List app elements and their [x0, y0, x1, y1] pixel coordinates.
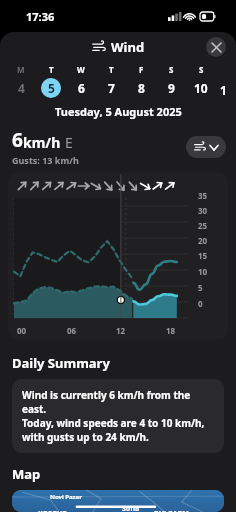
staticText: 5 — [48, 80, 55, 96]
staticText: 20 — [198, 235, 208, 246]
staticText: Wind — [111, 38, 145, 56]
staticText: 5 — [198, 282, 203, 293]
staticText: S — [169, 64, 174, 75]
staticText: 0 — [198, 298, 203, 309]
button[interactable]: Close — [206, 37, 226, 57]
staticText: 30 — [198, 205, 208, 216]
staticText: 17:36 — [26, 9, 55, 24]
staticText: 10 — [194, 80, 208, 96]
staticText: 4 — [18, 80, 25, 96]
staticText: Daily Summary — [12, 354, 110, 372]
staticText: S — [199, 64, 204, 75]
staticText: 15 — [198, 250, 208, 261]
staticText: Gusts: 13 km/h — [12, 154, 79, 166]
staticText: Map — [12, 465, 41, 483]
staticText: BULGARIA — [154, 509, 190, 512]
staticText: km/h — [23, 133, 61, 152]
staticText: 18 — [166, 325, 176, 335]
button[interactable]: F — [126, 64, 156, 98]
button[interactable]: Wind is currently 6 km/h from the east. … — [12, 379, 224, 453]
button[interactable]: S — [156, 64, 186, 98]
staticText: 00 — [17, 325, 27, 335]
staticText: 6 — [12, 127, 23, 153]
staticText: 35 — [198, 190, 208, 201]
button[interactable]: M — [6, 64, 36, 98]
staticText: 25 — [198, 220, 208, 231]
button[interactable] — [186, 136, 226, 158]
staticText: M — [17, 64, 25, 75]
button[interactable]: T — [96, 64, 126, 98]
staticText: Wind is currently 6 km/h from the east. … — [22, 388, 214, 444]
staticText: T — [49, 64, 54, 75]
staticText: Novi Pazar — [50, 493, 82, 501]
staticText: KOSOVO — [38, 509, 68, 512]
staticText: Sofia — [122, 504, 140, 512]
staticText: 6 — [78, 80, 85, 96]
button[interactable]: W — [66, 64, 96, 98]
staticText: W — [77, 64, 85, 75]
button[interactable]: Map — [12, 490, 224, 512]
staticText: E — [65, 133, 73, 152]
staticText: T — [109, 64, 114, 75]
staticText: 7 — [108, 80, 115, 96]
staticText: Tuesday, 5 August 2025 — [55, 104, 182, 119]
staticText: 06 — [67, 325, 77, 335]
staticText: 12 — [116, 325, 126, 335]
button[interactable]: S — [186, 64, 216, 98]
staticText: F — [139, 64, 144, 75]
staticText: 9 — [168, 80, 175, 96]
button[interactable]: T — [36, 64, 66, 98]
staticText: 8 — [138, 80, 145, 96]
staticText: 10 — [198, 266, 208, 277]
staticText: 1 — [220, 82, 227, 98]
